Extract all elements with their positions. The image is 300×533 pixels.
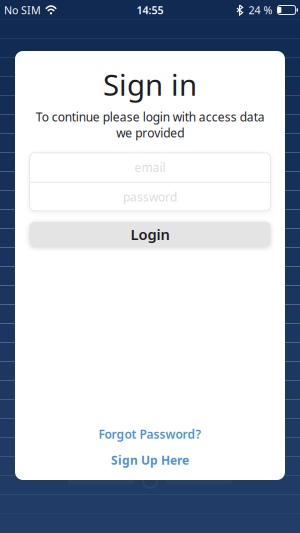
staticText: 24 % (249, 3, 273, 17)
button[interactable]: Sign Up Here (111, 452, 189, 468)
staticText: Forgot Password? (98, 426, 201, 442)
staticText: 14:55 (136, 3, 163, 17)
staticText: No SIM (4, 3, 41, 17)
staticText: password (123, 189, 177, 205)
button[interactable]: Forgot Password? (98, 426, 201, 442)
staticText: Sign Up Here (111, 452, 189, 468)
staticText: Sign in (103, 65, 197, 104)
staticText: Login (130, 225, 169, 244)
button[interactable]: password (29, 183, 270, 211)
staticText: email (134, 159, 165, 175)
button[interactable]: email (29, 153, 270, 182)
staticText: To continue please login with access dat… (35, 109, 264, 141)
button[interactable]: Login (29, 222, 270, 247)
